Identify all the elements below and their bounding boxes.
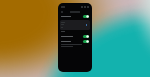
- button[interactable]: [60, 20, 90, 30]
- button[interactable]: Back: [60, 10, 63, 13]
- button[interactable]: [58, 15, 92, 18]
- button[interactable]: [58, 40, 92, 43]
- button[interactable]: [58, 35, 92, 38]
